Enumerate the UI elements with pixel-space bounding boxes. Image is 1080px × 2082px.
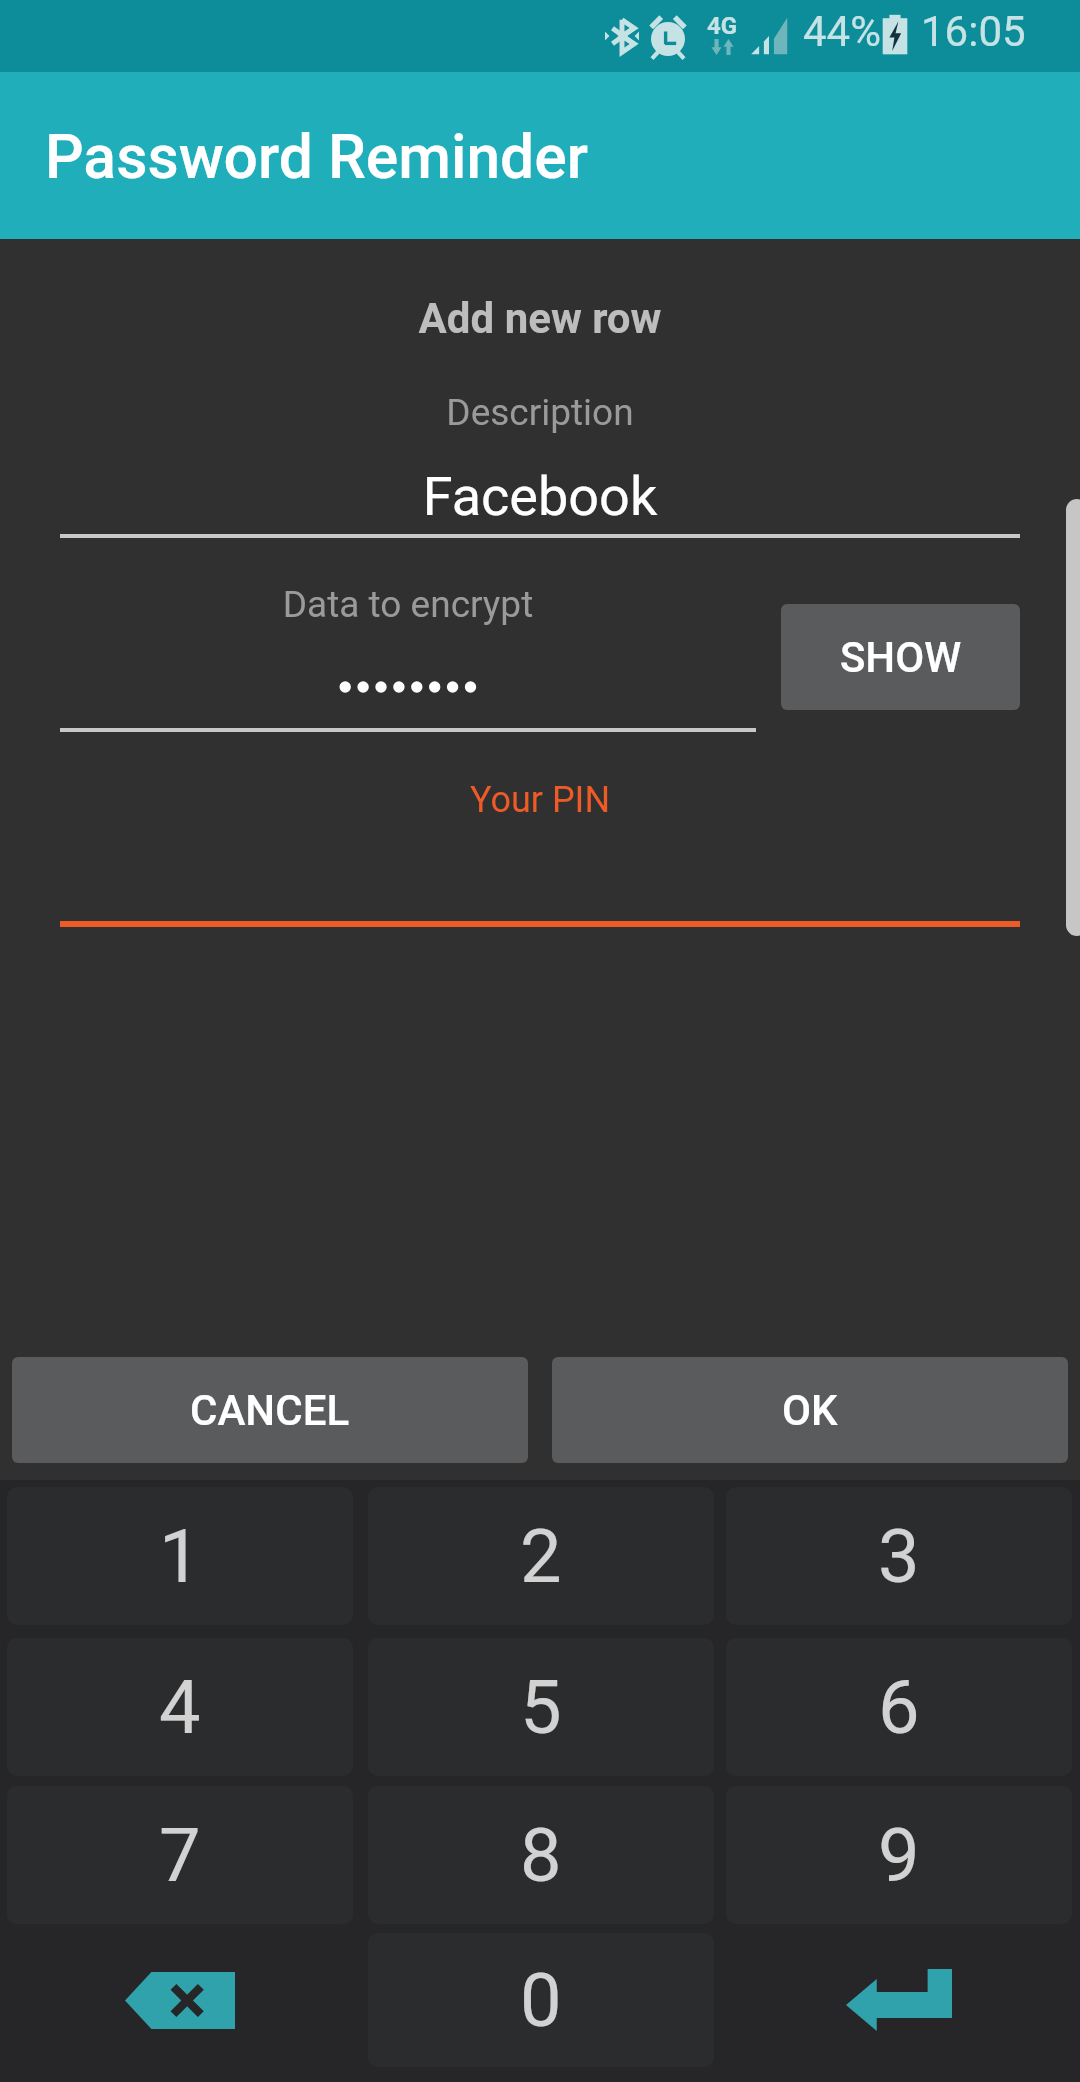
staticText: 4	[159, 1664, 201, 1751]
button[interactable]: OK	[552, 1357, 1068, 1463]
staticText: SHOW	[840, 633, 962, 682]
button[interactable]: 6	[726, 1638, 1072, 1776]
staticText: 2	[520, 1513, 562, 1600]
button[interactable]: 9	[726, 1786, 1072, 1924]
staticText: Password Reminder	[45, 122, 588, 193]
staticText: Add new row	[0, 294, 1080, 343]
button[interactable]: 7	[7, 1786, 353, 1924]
button[interactable]: 8	[368, 1786, 714, 1924]
staticText: 0	[520, 1957, 562, 2044]
button[interactable]: 1	[7, 1487, 353, 1625]
staticText: Your PIN	[60, 779, 1020, 821]
button[interactable]: 4	[7, 1638, 353, 1776]
button[interactable]: Your PIN	[60, 759, 1020, 927]
staticText: 7	[159, 1812, 201, 1899]
button[interactable]: Enter	[726, 1933, 1072, 2067]
button[interactable]: Backspace	[7, 1933, 353, 2067]
staticText: OK	[782, 1386, 838, 1435]
staticText: 6	[878, 1664, 920, 1751]
staticText: 44%	[803, 7, 881, 56]
staticText: 1	[159, 1513, 201, 1600]
staticText: Facebook	[60, 465, 1020, 528]
staticText: 4G	[707, 12, 738, 40]
button[interactable]: 0	[368, 1933, 714, 2067]
staticText: Data to encrypt	[60, 583, 756, 626]
button[interactable]: SHOW	[781, 604, 1020, 710]
button[interactable]: 5	[368, 1638, 714, 1776]
staticText: CANCEL	[190, 1386, 350, 1435]
button[interactable]: Facebook	[60, 439, 1020, 538]
staticText: Description	[0, 391, 1080, 434]
staticText: 16:05	[921, 7, 1026, 56]
staticText: 3	[878, 1513, 920, 1600]
staticText: 8	[520, 1812, 562, 1899]
staticText: 5	[520, 1664, 562, 1751]
button[interactable]: CANCEL	[12, 1357, 528, 1463]
button[interactable]: 2	[368, 1487, 714, 1625]
button[interactable]	[60, 649, 756, 732]
button[interactable]: 3	[726, 1487, 1072, 1625]
staticText: 9	[878, 1812, 920, 1899]
